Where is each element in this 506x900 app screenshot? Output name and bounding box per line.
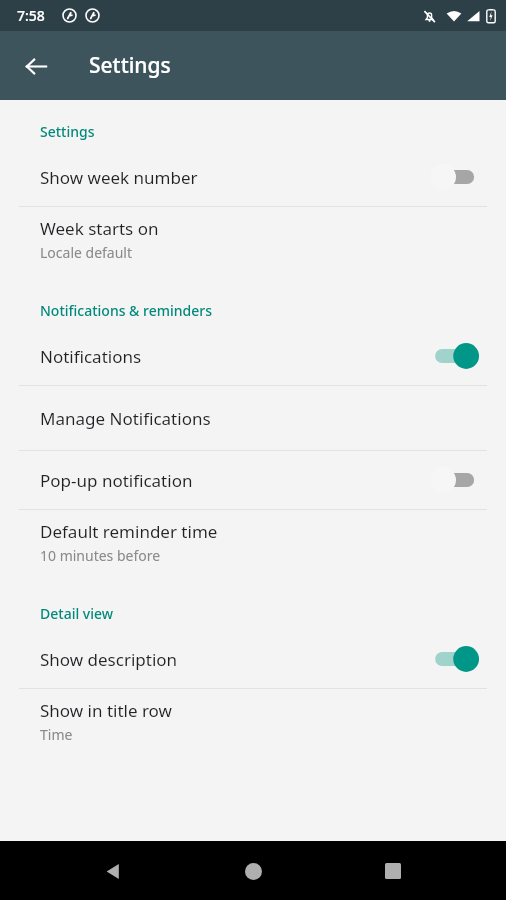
button[interactable]: Pop-up notification <box>0 451 506 509</box>
staticText: 10 minutes before <box>40 546 161 565</box>
button[interactable]: Show description <box>0 630 506 688</box>
staticText: Week starts on <box>40 217 159 240</box>
staticText: Time <box>40 725 73 744</box>
staticText: Detail view <box>40 604 506 623</box>
staticText: Default reminder time <box>40 520 218 543</box>
button[interactable]: Show in title row <box>0 689 506 753</box>
staticText: 7:58 <box>17 6 45 25</box>
button[interactable]: Home <box>230 848 276 894</box>
staticText: Settings <box>89 51 171 80</box>
staticText: Show description <box>40 648 432 671</box>
button[interactable]: Back <box>13 43 59 89</box>
staticText: Show week number <box>40 166 432 189</box>
button[interactable]: Notifications <box>0 327 506 385</box>
button[interactable]: Default reminder time <box>0 510 506 574</box>
button[interactable]: Back <box>90 848 136 894</box>
staticText: Pop-up notification <box>40 469 432 492</box>
staticText: Manage Notifications <box>40 407 211 430</box>
staticText: Settings <box>40 122 506 141</box>
staticText: Notifications & reminders <box>40 301 506 320</box>
button[interactable]: Week starts on <box>0 207 506 271</box>
button[interactable]: Show week number <box>0 148 506 206</box>
staticText: Notifications <box>40 345 432 368</box>
button[interactable]: Recent apps <box>370 848 416 894</box>
button[interactable]: Manage Notifications <box>0 386 506 450</box>
staticText: Show in title row <box>40 699 172 722</box>
staticText: Locale default <box>40 243 133 262</box>
